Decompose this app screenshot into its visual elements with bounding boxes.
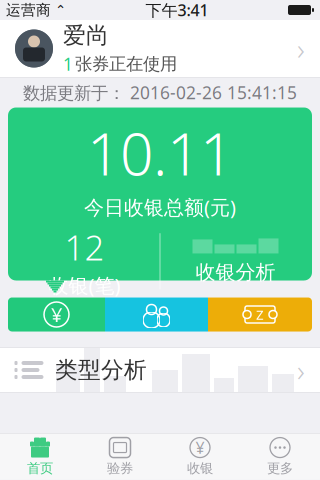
staticText: 收银 <box>187 460 213 476</box>
button[interactable]: 首页 <box>0 434 80 480</box>
staticText: 爱尚 <box>63 22 109 49</box>
staticText: 今日收银总额(元) <box>84 194 236 220</box>
staticText: ⌃ <box>51 2 66 17</box>
button[interactable]: ¥ <box>160 434 240 480</box>
staticText: 收银分析 <box>195 260 275 285</box>
button[interactable]: 收银分析 <box>160 230 310 292</box>
staticText: 12 <box>64 224 104 270</box>
staticText: 1 <box>63 52 73 75</box>
button[interactable]: 收银 <box>8 297 105 331</box>
staticText: 下午3:41 <box>145 0 208 21</box>
button[interactable]: 优惠券 <box>208 297 312 331</box>
staticText: ¥ <box>195 437 204 458</box>
staticText: 类型分析 <box>55 356 147 384</box>
staticText: 10.11 <box>87 114 233 192</box>
button[interactable]: 会员 <box>105 297 208 331</box>
staticText: 张券正在使用 <box>75 53 177 75</box>
button[interactable]: 爱尚 <box>0 20 320 77</box>
staticText: 更多 <box>267 460 293 476</box>
staticText: 验券 <box>107 460 133 476</box>
staticText: 数据更新于： 2016-02-26 15:41:15 <box>23 81 297 104</box>
staticText: 收银(笔) <box>48 272 120 299</box>
button[interactable]: 类型分析 <box>0 348 320 392</box>
button[interactable]: 验券 <box>80 434 160 480</box>
staticText: › <box>297 29 305 68</box>
staticText: 首页 <box>27 460 53 476</box>
staticText: 运营商 <box>6 1 51 19</box>
button[interactable]: 12 <box>9 230 159 292</box>
staticText: Z <box>256 306 264 323</box>
staticText: › <box>297 350 305 389</box>
staticText: ¥ <box>51 301 62 328</box>
button[interactable]: 更多 <box>240 434 320 480</box>
